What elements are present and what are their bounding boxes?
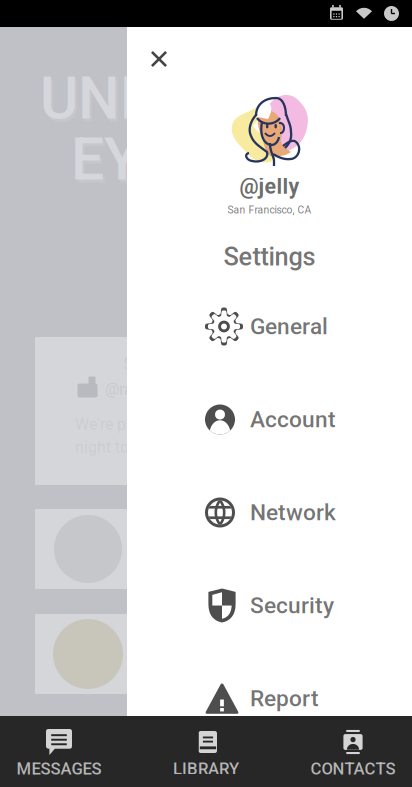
button[interactable]: CONTACTS — [294, 716, 412, 787]
button[interactable]: Report — [127, 652, 412, 745]
staticText: We're planning a quiet — [75, 415, 231, 434]
staticText: MESSAGES — [16, 759, 101, 778]
staticText: Settings — [223, 242, 315, 272]
button[interactable]: Security — [127, 559, 412, 652]
staticText: UNEY — [40, 64, 189, 133]
staticText: EYE — [71, 125, 173, 194]
staticText: S — [123, 353, 134, 375]
staticText: @jelly — [239, 174, 299, 199]
staticText: LIBRARY — [173, 759, 239, 778]
staticText: Report — [250, 685, 319, 712]
staticText: CONTACTS — [310, 759, 395, 778]
button[interactable]: LIBRARY — [118, 716, 294, 787]
button[interactable]: General — [127, 280, 412, 373]
staticText: night to get together — [75, 438, 217, 457]
staticText: Security — [250, 592, 334, 619]
button[interactable]: Network — [127, 466, 412, 559]
button[interactable]: MESSAGES — [0, 716, 118, 787]
staticText: General — [250, 313, 328, 340]
staticText: Account — [250, 406, 336, 433]
staticText: Network — [250, 499, 336, 526]
button[interactable]: Close — [138, 38, 180, 80]
staticText: UNEY — [42, 67, 191, 136]
staticText: EYE — [73, 128, 175, 197]
button[interactable]: Account — [127, 373, 412, 466]
staticText: San Francisco, CA — [227, 204, 311, 216]
staticText: @randomuser — [105, 380, 206, 399]
